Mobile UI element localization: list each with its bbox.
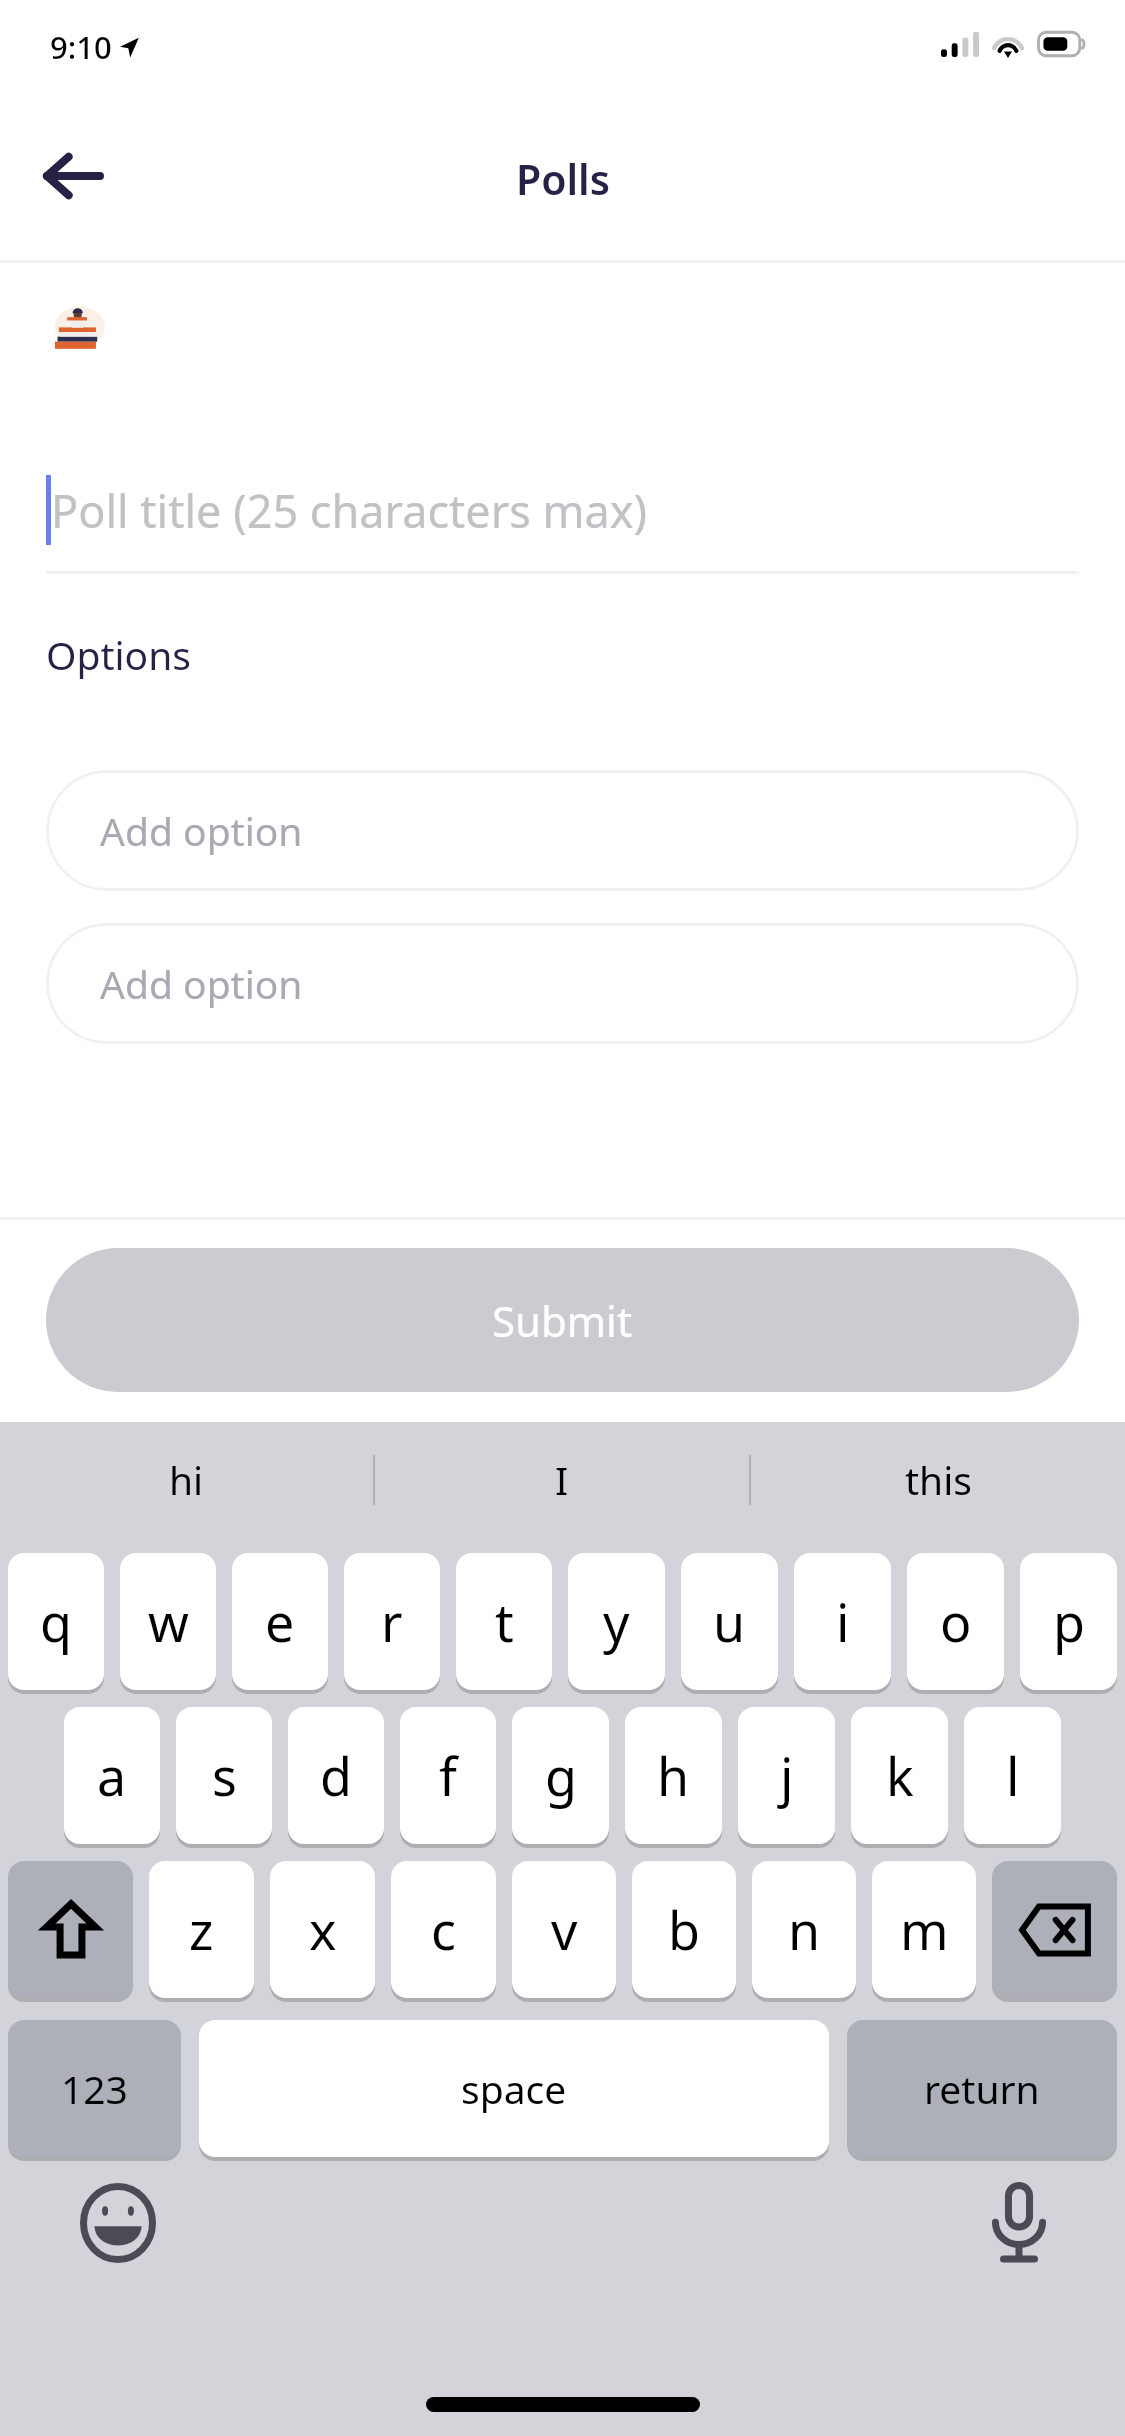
staticText: Add option (100, 957, 303, 1010)
button[interactable]: v (512, 1861, 616, 1998)
button[interactable]: s (176, 1707, 272, 1844)
staticText: 123 (61, 2062, 128, 2115)
staticText: t (495, 1586, 514, 1657)
button[interactable]: i (794, 1553, 891, 1690)
button[interactable]: w (120, 1553, 216, 1690)
button[interactable]: x (270, 1861, 375, 1998)
staticText: Submit (492, 1292, 633, 1349)
staticText: f (439, 1740, 457, 1811)
button[interactable]: n (752, 1861, 856, 1998)
staticText: w (148, 1586, 189, 1657)
staticText: q (40, 1586, 72, 1657)
button[interactable]: f (400, 1707, 496, 1844)
staticText: l (1006, 1740, 1020, 1811)
button[interactable]: b (632, 1861, 736, 1998)
staticText: Options (46, 628, 191, 681)
staticText: u (713, 1586, 746, 1657)
staticText: j (780, 1740, 794, 1811)
staticText: o (940, 1586, 972, 1657)
staticText: hi (169, 1453, 204, 1506)
button[interactable]: a (64, 1707, 160, 1844)
staticText: p (1053, 1586, 1085, 1657)
staticText: 9:10 (50, 26, 112, 68)
button[interactable]: Poll title (25 characters max) (0, 455, 1125, 565)
button[interactable]: g (512, 1707, 609, 1844)
staticText: g (545, 1740, 577, 1811)
button[interactable]: Shift (8, 1861, 133, 1998)
staticText: space (461, 2062, 567, 2115)
staticText: return (924, 2062, 1040, 2115)
staticText: y (603, 1586, 630, 1657)
staticText: m (900, 1894, 949, 1965)
staticText: k (886, 1740, 914, 1811)
button[interactable]: j (738, 1707, 835, 1844)
button[interactable]: r (344, 1553, 440, 1690)
button[interactable]: this (751, 1422, 1125, 1537)
button[interactable]: Submit (46, 1248, 1079, 1392)
button[interactable]: Add option (46, 770, 1079, 891)
button[interactable]: q (8, 1553, 104, 1690)
staticText: x (309, 1894, 337, 1965)
staticText: I (555, 1453, 569, 1506)
staticText: c (431, 1894, 456, 1965)
button[interactable]: m (872, 1861, 976, 1998)
staticText: Add option (100, 804, 303, 857)
staticText: e (265, 1586, 295, 1657)
staticText: Poll title (25 characters max) (51, 480, 648, 541)
staticText: i (836, 1586, 850, 1657)
staticText: v (551, 1894, 578, 1965)
staticText: d (320, 1740, 352, 1811)
button[interactable]: y (568, 1553, 665, 1690)
button[interactable]: t (456, 1553, 552, 1690)
staticText: this (905, 1453, 972, 1506)
button[interactable]: z (149, 1861, 254, 1998)
button[interactable]: p (1020, 1553, 1117, 1690)
staticText: a (97, 1740, 127, 1811)
button[interactable]: o (907, 1553, 1004, 1690)
button[interactable]: Backspace (992, 1861, 1117, 1998)
button[interactable]: I (375, 1422, 749, 1537)
button[interactable]: d (288, 1707, 384, 1844)
staticText: h (657, 1740, 690, 1811)
button[interactable]: Dictation (979, 2183, 1059, 2263)
button[interactable]: e (232, 1553, 328, 1690)
button[interactable]: l (964, 1707, 1061, 1844)
button[interactable]: Add option (46, 923, 1079, 1044)
button[interactable]: space (199, 2020, 829, 2157)
staticText: s (212, 1740, 237, 1811)
staticText: Polls (516, 151, 610, 207)
staticText: n (788, 1894, 821, 1965)
button[interactable]: return (847, 2020, 1117, 2157)
staticText: r (381, 1586, 403, 1657)
button[interactable]: hi (0, 1422, 373, 1537)
button[interactable]: u (681, 1553, 778, 1690)
button[interactable]: c (391, 1861, 496, 1998)
button[interactable]: Back (22, 126, 122, 226)
button[interactable]: 123 (8, 2020, 181, 2157)
button[interactable]: k (851, 1707, 948, 1844)
button[interactable]: h (625, 1707, 722, 1844)
staticText: z (189, 1894, 214, 1965)
staticText: b (668, 1894, 700, 1965)
button[interactable]: Emoji (78, 2183, 158, 2263)
